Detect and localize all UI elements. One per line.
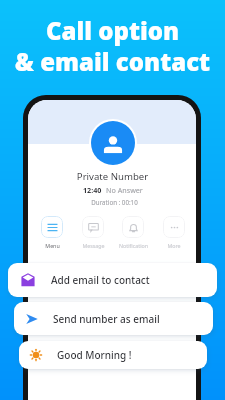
staticText: Notification <box>119 242 148 249</box>
staticText: Message <box>82 242 105 249</box>
staticText: Call option <box>0 14 225 47</box>
staticText: Menu <box>45 242 60 249</box>
staticText: Private Number <box>0 170 225 183</box>
button[interactable]: Send number as email <box>14 302 213 335</box>
button[interactable]: Add email to contact <box>8 263 217 297</box>
staticText: Send number as email <box>53 312 160 326</box>
staticText: & email contact <box>0 45 225 78</box>
button[interactable]: Menu <box>32 216 72 249</box>
staticText: Add email to contact <box>51 273 150 287</box>
staticText: Duration : 00:10 <box>2 198 225 206</box>
staticText: No Answer <box>106 185 143 195</box>
staticText: More <box>167 242 181 249</box>
button[interactable]: Message <box>73 216 113 249</box>
staticText: Good Morning ! <box>57 348 132 362</box>
button[interactable]: More <box>154 216 194 249</box>
button[interactable]: Good Morning ! <box>19 341 207 369</box>
staticText: 12:40 <box>83 185 102 195</box>
button[interactable]: Notification <box>113 216 153 249</box>
